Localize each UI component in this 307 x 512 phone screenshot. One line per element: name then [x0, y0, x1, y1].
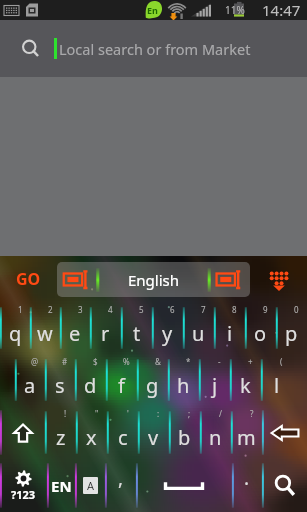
button[interactable]: Shift [0, 406, 45, 459]
staticText: # [62, 356, 68, 367]
button[interactable]: ! [45, 406, 76, 459]
staticText: f [118, 372, 125, 399]
staticText: t [133, 320, 141, 347]
staticText: ? [250, 408, 254, 419]
staticText: & [155, 356, 161, 367]
staticText: / [219, 408, 222, 419]
staticText: o [254, 320, 267, 347]
staticText: h [177, 372, 190, 399]
staticText: ; [188, 408, 191, 419]
button[interactable]: , [105, 459, 136, 512]
button[interactable]: : [138, 406, 169, 459]
staticText: 11% [225, 3, 245, 17]
staticText: a [24, 372, 36, 399]
staticText: 9 [263, 304, 268, 315]
staticText: 8 [232, 304, 237, 315]
staticText: + [248, 356, 253, 367]
button[interactable]: $ [75, 354, 106, 406]
staticText: 7 [201, 304, 206, 315]
staticText: v [148, 424, 159, 451]
staticText: p [285, 320, 298, 347]
button[interactable]: Emoji [250, 256, 307, 302]
staticText: Local search or from Market [59, 39, 251, 59]
staticText: - [218, 356, 221, 367]
staticText: z [56, 424, 66, 451]
staticText: % [123, 356, 130, 367]
button[interactable]: English [111, 262, 196, 297]
staticText: GO [16, 268, 41, 290]
staticText: 2 [48, 304, 53, 315]
staticText: ! [64, 408, 67, 419]
button[interactable]: Space [136, 459, 232, 512]
button[interactable]: # [45, 354, 75, 406]
staticText: 6 [170, 304, 175, 315]
staticText: ?123 [11, 487, 36, 502]
button[interactable]: @ [15, 354, 45, 406]
button[interactable]: 5 [121, 302, 152, 354]
button[interactable]: ? [231, 406, 262, 459]
staticText: u [192, 320, 205, 347]
staticText: y [162, 320, 173, 347]
staticText: " [95, 408, 99, 419]
staticText: 3 [78, 304, 83, 315]
button[interactable]: ; [169, 406, 200, 459]
staticText: , [118, 465, 124, 491]
button[interactable]: GO [0, 256, 57, 302]
button[interactable]: Symbols [0, 459, 47, 512]
button[interactable]: / [200, 406, 231, 459]
button[interactable]: ( [261, 354, 292, 406]
button[interactable]: " [76, 406, 107, 459]
staticText: 1 [18, 304, 23, 315]
staticText: g [146, 372, 159, 399]
button[interactable]: * [168, 354, 199, 406]
staticText: 5 [139, 304, 144, 315]
staticText: j [212, 372, 218, 399]
button[interactable]: EN [47, 459, 75, 512]
button[interactable]: ' [107, 406, 138, 459]
button[interactable]: . [232, 459, 262, 512]
staticText: w [37, 320, 53, 347]
staticText: n [209, 424, 222, 451]
button[interactable]: 0 [276, 302, 307, 354]
button[interactable]: Input language [75, 459, 105, 512]
button[interactable]: & [137, 354, 168, 406]
button[interactable]: 6 [152, 302, 183, 354]
button[interactable]: + [230, 354, 261, 406]
staticText: . [244, 465, 250, 491]
button[interactable]: 2 [30, 302, 60, 354]
button[interactable]: 8 [214, 302, 245, 354]
button[interactable]: Local search or from Market [0, 20, 307, 77]
staticText: c [118, 424, 128, 451]
staticText: x [86, 424, 97, 451]
button[interactable]: 7 [183, 302, 214, 354]
staticText: d [84, 372, 97, 399]
staticText: English [128, 270, 180, 290]
staticText: s [55, 372, 65, 399]
button[interactable]: Next input method [196, 262, 250, 297]
button[interactable]: Previous input method [57, 262, 111, 297]
staticText: $ [93, 356, 98, 367]
staticText: EN [51, 476, 72, 496]
staticText: l [274, 372, 280, 399]
staticText: ( [280, 356, 283, 367]
button[interactable]: 9 [245, 302, 276, 354]
staticText: k [240, 372, 251, 399]
button[interactable]: Search [262, 459, 307, 512]
staticText: e [69, 320, 81, 347]
staticText: i [227, 320, 233, 347]
staticText: q [9, 320, 22, 347]
button[interactable]: Backspace [262, 406, 307, 459]
staticText: 14:47 [262, 0, 301, 20]
button[interactable]: % [106, 354, 137, 406]
button[interactable]: 3 [60, 302, 90, 354]
button[interactable]: 4 [90, 302, 121, 354]
staticText: b [178, 424, 191, 451]
button[interactable]: - [199, 354, 230, 406]
staticText: 0 [294, 304, 299, 315]
staticText: r [101, 320, 110, 347]
staticText: @ [31, 356, 39, 367]
button[interactable]: 1 [0, 302, 30, 354]
staticText: ' [127, 408, 129, 419]
staticText: m [237, 424, 256, 451]
staticText: 4 [108, 304, 113, 315]
